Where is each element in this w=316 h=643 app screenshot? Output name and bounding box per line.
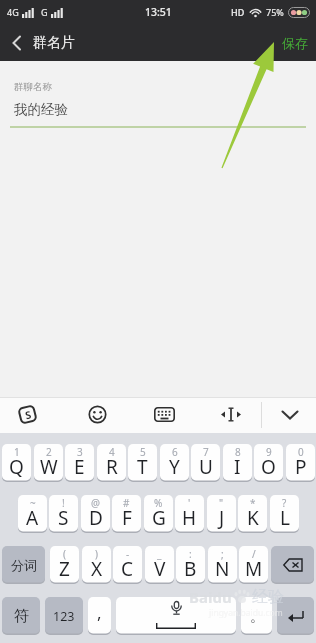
staticText: S [23,407,33,422]
staticText: 3 [77,445,83,459]
button[interactable]: 。 [241,597,272,635]
button[interactable]: 分词 [2,546,45,584]
button[interactable]: 保存 [282,35,308,51]
staticText: G [41,6,48,18]
button[interactable]: - [113,546,142,584]
button[interactable]: : [176,546,205,584]
staticText: I [234,454,241,480]
staticText: X [91,556,103,582]
staticText: ! [62,496,65,510]
staticText: 群聊名称 [14,81,52,93]
staticText: O [261,454,276,480]
button[interactable]: ) [82,546,111,584]
staticText: S [58,505,69,531]
button[interactable]: @ [81,495,110,533]
button[interactable]: 2 [34,444,63,482]
staticText: HD [231,6,245,18]
staticText: 13:51 [145,5,172,19]
staticText: Z [59,556,70,582]
staticText: 。 [250,608,264,626]
button[interactable]: 5 [128,444,157,482]
button[interactable]: 1 [2,444,31,482]
staticText: U [199,454,213,480]
button[interactable]: ; [208,546,237,584]
button[interactable] [154,407,175,422]
button[interactable]: * [238,495,267,533]
staticText: W [40,454,58,480]
button[interactable] [221,407,241,422]
button[interactable]: / [239,546,268,584]
staticText: 群名片 [33,34,75,52]
button[interactable] [116,597,236,635]
button[interactable] [88,405,107,424]
button[interactable]: 4 [97,444,126,482]
staticText: , [97,601,102,624]
staticText: : [189,547,192,561]
staticText: F [122,505,132,531]
staticText: P [295,454,307,480]
staticText: 6 [172,445,178,459]
button[interactable]: S [17,404,38,425]
staticText: 保存 [282,35,308,51]
button[interactable]: 0 [286,444,315,482]
staticText: ) [95,547,98,561]
button[interactable]: 6 [160,444,189,482]
staticText: D [89,505,103,531]
staticText: E [74,454,85,480]
staticText: - [126,547,130,561]
staticText: 123 [53,608,75,625]
staticText: H [182,505,197,531]
staticText: jingyan.baidu.com [209,607,283,619]
staticText: % [154,496,163,510]
button[interactable]: ~ [18,495,47,533]
button[interactable]: # [112,495,141,533]
staticText: 8 [235,445,241,459]
staticText: V [154,556,166,582]
staticText: M [245,556,263,582]
staticText: G [152,505,166,531]
staticText: ; [221,547,224,561]
button[interactable] [277,597,314,635]
button[interactable]: " [207,495,236,533]
button[interactable] [281,410,299,420]
staticText: C [121,556,134,582]
button[interactable]: ! [49,495,78,533]
staticText: A [26,505,39,531]
button[interactable]: 群名片 [12,34,75,52]
button[interactable]: _ [145,546,174,584]
button[interactable]: 符 [2,597,40,635]
staticText: @ [91,496,100,510]
staticText: 符 [14,607,29,626]
staticText: # [123,496,130,510]
button[interactable]: ( [50,546,79,584]
staticText: T [137,454,148,480]
staticText: B [184,556,197,582]
staticText: ' [188,496,191,510]
staticText: ( [63,547,66,561]
staticText: 75% [266,6,284,18]
staticText: K [247,505,259,531]
button[interactable]: % [144,495,173,533]
staticText: 分词 [11,557,37,573]
button[interactable]: ? [270,495,299,533]
staticText: 1 [14,445,20,459]
staticText: Q [9,454,24,480]
button[interactable] [271,546,314,584]
staticText: ~ [30,496,36,510]
button[interactable]: 123 [45,597,83,635]
staticText: R [106,454,118,480]
button[interactable]: 9 [254,444,283,482]
staticText: 5 [140,445,146,459]
staticText: _ [157,547,162,561]
staticText: J [219,505,225,531]
staticText: 0 [298,445,304,459]
staticText: 2 [46,445,52,459]
button[interactable]: 7 [191,444,220,482]
staticText: * [250,496,256,510]
staticText: 4 [109,445,115,459]
staticText: " [219,496,224,510]
button[interactable]: 8 [223,444,252,482]
button[interactable]: ' [175,495,204,533]
button[interactable]: , [88,597,111,635]
button[interactable]: 3 [65,444,94,482]
